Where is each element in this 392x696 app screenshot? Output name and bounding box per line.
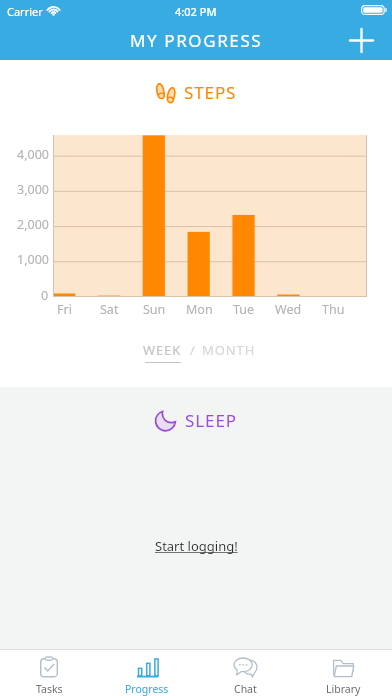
staticText: Progress	[125, 682, 169, 696]
staticText: Chat	[234, 682, 257, 696]
staticText: Library	[326, 682, 361, 696]
staticText: Tue	[233, 301, 255, 316]
staticText: 3,000	[17, 181, 49, 198]
staticText: STEPS	[184, 81, 237, 104]
staticText: Carrier	[7, 4, 43, 19]
button[interactable]: Progress	[98, 650, 196, 696]
staticText: Sat	[100, 301, 119, 316]
staticText: 1,000	[17, 251, 49, 268]
button[interactable]: MONTH	[202, 341, 256, 359]
staticText: MY PROGRESS	[130, 29, 263, 52]
button[interactable]: Chat	[196, 650, 294, 696]
staticText: SLEEP	[185, 409, 237, 432]
staticText: 0	[41, 287, 49, 304]
staticText: Mon	[186, 301, 213, 316]
staticText: /	[190, 341, 195, 359]
staticText: 2,000	[17, 216, 49, 233]
staticText: Start logging!	[155, 537, 238, 555]
button[interactable]: Add	[339, 18, 383, 62]
button[interactable]: Tasks	[0, 650, 98, 696]
staticText: Fri	[57, 301, 72, 316]
staticText: Thu	[322, 301, 345, 316]
button[interactable]: Start logging!	[155, 537, 238, 555]
staticText: 4,000	[17, 146, 49, 163]
staticText: Wed	[275, 301, 302, 316]
button[interactable]: WEEK	[143, 341, 182, 363]
staticText: 4:02 PM	[175, 4, 217, 19]
button[interactable]: Library	[294, 650, 392, 696]
staticText: Tasks	[36, 682, 63, 696]
staticText: WEEK	[143, 341, 182, 359]
staticText: Sun	[143, 301, 166, 316]
